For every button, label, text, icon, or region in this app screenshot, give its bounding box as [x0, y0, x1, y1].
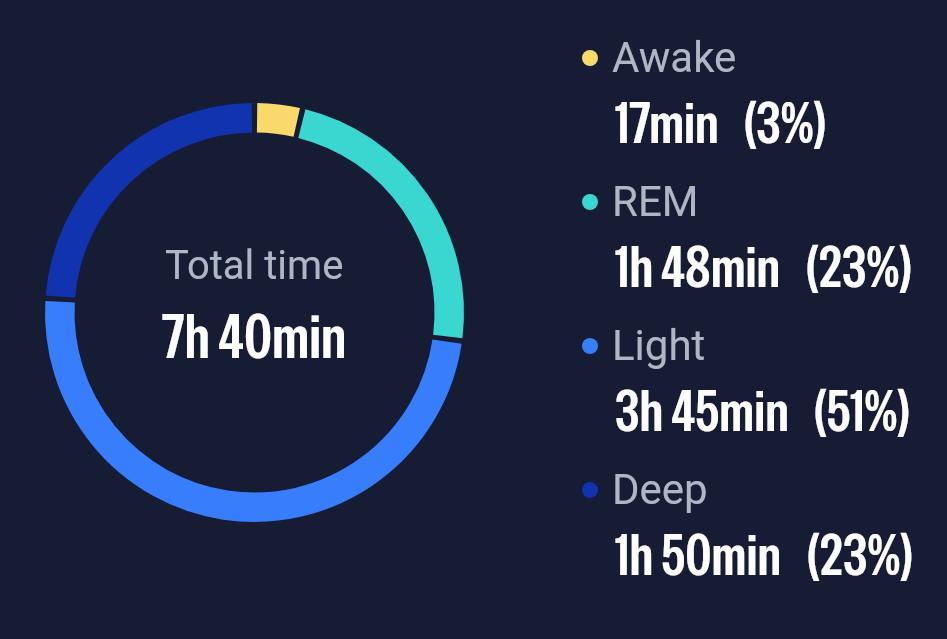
staticText: (23%): [807, 518, 913, 592]
staticText: REM: [612, 177, 699, 226]
staticText: 3h 45min: [615, 374, 789, 448]
staticText: Light: [612, 321, 706, 370]
staticText: (23%): [806, 230, 912, 304]
staticText: Total time: [165, 242, 344, 289]
button[interactable]: Deep: [582, 465, 880, 588]
staticText: 1h 50min: [615, 518, 782, 592]
staticText: 17min: [615, 86, 719, 160]
button[interactable]: Awake: [582, 33, 794, 156]
staticText: 7h 40min: [162, 297, 347, 376]
staticText: Awake: [612, 33, 737, 82]
button[interactable]: Light: [582, 321, 877, 444]
staticText: (3%): [744, 86, 827, 160]
staticText: Deep: [612, 465, 708, 514]
button[interactable]: REM: [582, 177, 879, 300]
staticText: 1h 48min: [615, 230, 781, 304]
staticText: (51%): [814, 374, 910, 448]
